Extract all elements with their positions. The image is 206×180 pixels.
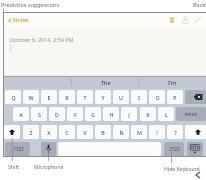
button[interactable]: G <box>85 107 101 121</box>
button[interactable]: F <box>67 107 83 121</box>
staticText: H <box>109 111 114 118</box>
staticText: N <box>119 129 124 136</box>
button[interactable]: A <box>13 107 29 121</box>
button[interactable]: J <box>121 107 137 121</box>
staticText: Backspace <box>193 1 206 8</box>
button[interactable]: Delete <box>167 15 177 25</box>
button[interactable]: Notes <box>7 16 29 24</box>
button[interactable]: Microphone <box>41 142 56 156</box>
button[interactable]: Compose <box>193 15 203 25</box>
staticText: .?123 <box>12 146 24 152</box>
button[interactable]: R <box>59 90 75 104</box>
staticText: G <box>91 111 95 118</box>
button[interactable]: L <box>158 107 174 121</box>
button[interactable]: T <box>77 90 93 104</box>
button[interactable]: O <box>149 90 165 104</box>
button[interactable]: E <box>41 90 57 104</box>
staticText: ? <box>174 129 177 136</box>
button[interactable]: .?123 <box>164 142 184 156</box>
button[interactable]: return <box>176 107 206 121</box>
button[interactable] <box>4 76 72 88</box>
staticText: Hide Keyboard <box>164 165 200 172</box>
button[interactable]: K <box>140 107 156 121</box>
staticText: Q <box>11 94 16 101</box>
button[interactable]: I <box>131 90 147 104</box>
button[interactable]: N <box>113 125 129 139</box>
staticText: A <box>19 111 23 118</box>
staticText: O <box>155 94 160 101</box>
button[interactable]: V <box>77 125 93 139</box>
button[interactable]: X <box>41 125 57 139</box>
button[interactable]: Backspace <box>185 90 206 104</box>
staticText: return <box>184 111 198 117</box>
staticText: X <box>47 129 51 136</box>
staticText: Microphone <box>34 163 64 170</box>
button[interactable]: H <box>103 107 119 121</box>
staticText: E <box>47 94 51 101</box>
staticText: The <box>101 79 111 86</box>
button[interactable]: U <box>113 90 129 104</box>
staticText: L <box>165 111 168 118</box>
staticText: I'm <box>168 79 177 86</box>
staticText: F <box>74 111 77 118</box>
button[interactable]: S <box>31 107 47 121</box>
staticText: B <box>101 129 105 136</box>
button[interactable]: I'm <box>139 76 206 88</box>
staticText: Z <box>29 129 33 136</box>
staticText: Shift <box>8 163 20 170</box>
staticText: T <box>83 94 87 101</box>
button[interactable]: Share <box>180 15 190 25</box>
button[interactable]: .?123 <box>5 142 30 156</box>
staticText: Y <box>101 94 105 101</box>
staticText: Predictive suggestions <box>1 1 60 8</box>
button[interactable]: Z <box>23 125 39 139</box>
button[interactable]: ? <box>167 125 183 139</box>
button[interactable]: ! <box>149 125 165 139</box>
button[interactable]: C <box>59 125 75 139</box>
staticText: D <box>55 111 59 118</box>
button[interactable]: Q <box>5 90 21 104</box>
staticText: M <box>137 129 142 136</box>
button[interactable]: Shift <box>4 125 20 139</box>
button[interactable]: Shift <box>185 125 206 139</box>
staticText: S <box>38 111 41 118</box>
staticText: U <box>119 94 123 101</box>
staticText: .?123 <box>168 146 180 152</box>
staticText: V <box>83 129 87 136</box>
button[interactable]: P <box>167 90 183 104</box>
staticText: I <box>138 94 140 101</box>
button[interactable]: Y <box>95 90 111 104</box>
staticText: ! <box>156 129 158 136</box>
staticText: R <box>65 94 69 101</box>
staticText: Notes <box>13 16 29 24</box>
button[interactable]: W <box>23 90 39 104</box>
staticText: P <box>173 94 177 101</box>
staticText: October 6, 2014, 2:54 PM <box>10 36 74 43</box>
button[interactable]: D <box>49 107 65 121</box>
button[interactable]: The <box>72 76 139 88</box>
staticText: K <box>146 111 150 118</box>
staticText: J <box>128 111 130 118</box>
button[interactable]: M <box>131 125 147 139</box>
staticText: W <box>28 94 34 101</box>
button[interactable]: B <box>95 125 111 139</box>
staticText: C <box>65 129 69 136</box>
button[interactable]: Hide Keyboard <box>187 142 203 156</box>
